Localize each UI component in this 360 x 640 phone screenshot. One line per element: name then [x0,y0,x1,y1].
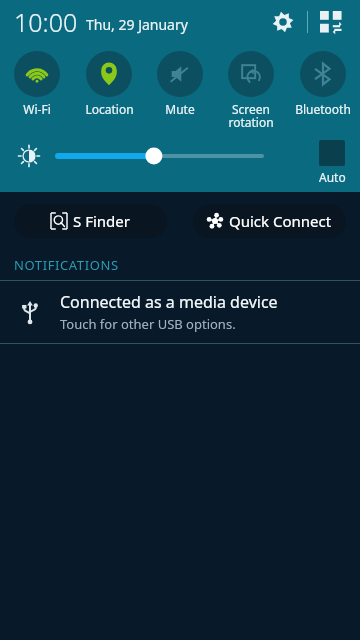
button[interactable]: Connected as a media device [0,281,360,343]
staticText: Mute [165,101,195,117]
button[interactable]: Mute [146,44,214,117]
staticText: Connected as a media device [60,291,278,313]
button[interactable]: Settings [266,5,300,39]
staticText: S Finder [73,211,130,231]
staticText: Wi-Fi [23,101,51,117]
button[interactable]: Auto [304,134,360,185]
staticText: Quick Connect [229,211,332,231]
staticText: Location [85,101,134,117]
button[interactable]: Brightness [58,134,304,178]
button[interactable]: Location [75,44,143,117]
staticText: Thu, 29 January [86,15,188,34]
staticText: 10:00 [14,5,78,39]
button[interactable]: Edit quick settings [314,5,348,39]
button[interactable]: Wi-Fi [3,44,71,117]
button[interactable]: Bluetooth [289,44,357,117]
button[interactable]: Quick Connect [193,204,346,238]
staticText: Screen rotation [228,101,274,131]
button[interactable]: S Finder [14,204,167,238]
staticText: Touch for other USB options. [60,315,236,333]
staticText: NOTIFICATIONS [14,256,119,274]
staticText: Bluetooth [295,101,351,117]
button[interactable]: Screen rotation [217,44,285,131]
staticText: Auto [319,169,346,185]
